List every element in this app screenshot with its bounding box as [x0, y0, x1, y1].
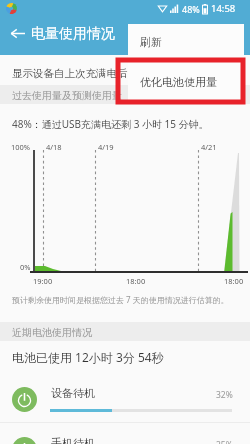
- staticText: 预计剩余使用时间是根据您过去 7 天的使用情况进行估算的。: [12, 294, 229, 305]
- staticText: 18:00: [224, 276, 244, 286]
- button[interactable]: Back: [6, 22, 28, 44]
- staticText: 100%: [11, 142, 31, 152]
- staticText: 18:00: [126, 276, 146, 286]
- staticText: 48%：通过USB充满电还剩 3 小时 15 分钟。: [12, 117, 209, 131]
- staticText: 4/21: [201, 142, 217, 152]
- staticText: 优化电池使用量: [140, 75, 217, 89]
- staticText: 显示设备自上次充满电后的电量使用情况: [12, 67, 201, 80]
- staticText: 4/19: [98, 142, 114, 152]
- staticText: 0%: [20, 262, 31, 272]
- staticText: 48%: [182, 3, 200, 15]
- staticText: 4/18: [46, 142, 62, 152]
- staticText: 过去使用量及预测使用量: [12, 89, 122, 102]
- staticText: 32%: [216, 389, 233, 401]
- staticText: 刷新: [140, 35, 162, 49]
- button[interactable]: 刷新: [128, 24, 244, 62]
- staticText: 手机待机: [51, 436, 95, 444]
- button[interactable]: 手机待机: [0, 421, 250, 444]
- staticText: 近期电池使用情况: [12, 326, 92, 339]
- staticText: 电池已使用 12小时 3分 54秒: [12, 349, 164, 365]
- staticText: 19:00: [33, 276, 53, 286]
- staticText: 14:58: [211, 2, 236, 15]
- button[interactable]: 设备待机: [0, 371, 250, 423]
- staticText: 电量使用情况: [31, 25, 115, 43]
- staticText: 25%: [216, 439, 233, 444]
- button[interactable]: 优化电池使用量: [128, 62, 244, 103]
- staticText: 设备待机: [51, 386, 95, 400]
